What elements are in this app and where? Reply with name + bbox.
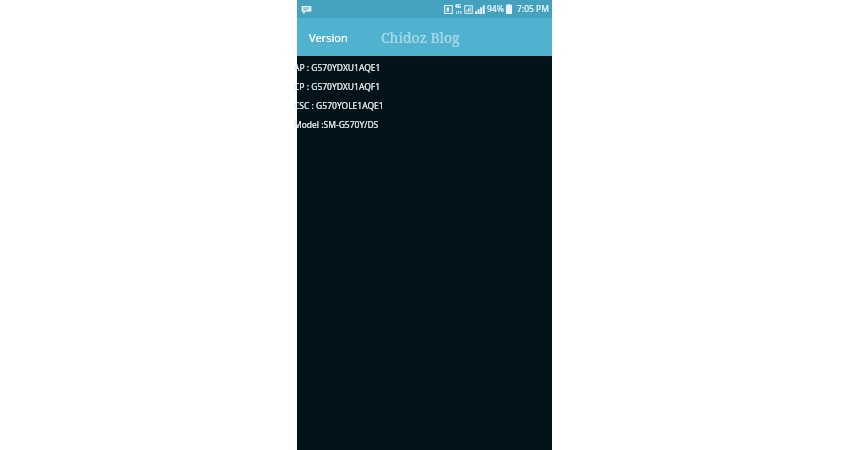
staticText: CSC : G570YOLE1AQE1: [294, 100, 384, 112]
staticText: 7:05 PM: [517, 3, 549, 15]
staticText: Chidoz Blog: [381, 28, 460, 47]
staticText: AP : G570YDXU1AQE1: [294, 62, 381, 74]
other: Message notification: [301, 4, 312, 15]
button[interactable]: Chidoz Blog: [379, 24, 462, 51]
button[interactable]: Version: [307, 26, 350, 49]
staticText: 94%: [487, 3, 504, 15]
staticText: 4G: [455, 3, 462, 10]
staticText: Model :SM-G570Y/DS: [294, 119, 379, 131]
staticText: CP : G570YDXU1AQF1: [294, 81, 381, 93]
staticText: LTE: [456, 10, 462, 15]
staticText: Version: [309, 30, 348, 45]
